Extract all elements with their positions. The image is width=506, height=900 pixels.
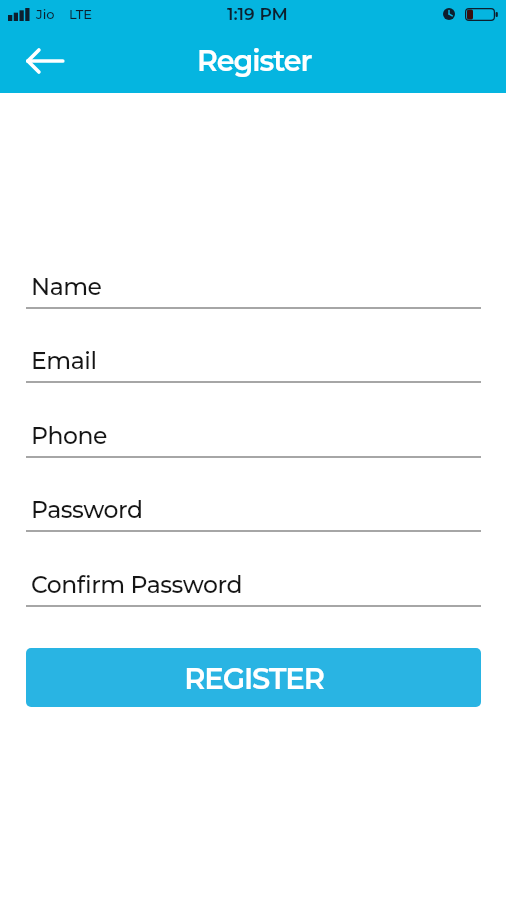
button[interactable]: Email: [26, 309, 481, 383]
staticText: Phone: [31, 421, 108, 450]
button[interactable]: Confirm Password: [26, 532, 481, 607]
button[interactable]: Phone: [26, 383, 481, 458]
staticText: LTE: [69, 6, 93, 22]
staticText: REGISTER: [184, 661, 324, 696]
staticText: Password: [31, 495, 143, 524]
staticText: Register: [197, 43, 312, 78]
button[interactable]: Password: [26, 458, 481, 532]
button[interactable]: Name: [26, 234, 481, 309]
staticText: Name: [31, 272, 102, 301]
staticText: 1:19 PM: [227, 4, 288, 25]
button[interactable]: REGISTER: [26, 648, 481, 707]
button[interactable]: Back: [17, 33, 73, 89]
staticText: Confirm Password: [31, 570, 242, 599]
staticText: Email: [31, 346, 97, 375]
staticText: Jio: [36, 6, 55, 22]
